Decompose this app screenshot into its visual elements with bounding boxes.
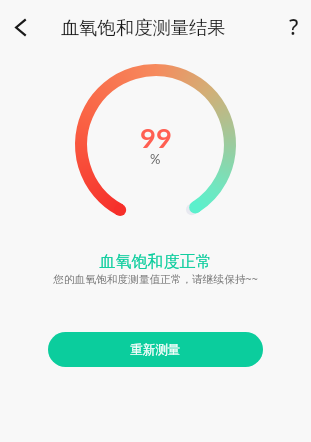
button[interactable]: Back (0, 7, 40, 47)
staticText: 99 (140, 121, 172, 154)
staticText: % (150, 151, 161, 167)
staticText: 重新测量 (130, 342, 181, 358)
button[interactable]: Help (277, 7, 311, 47)
staticText: ? (289, 13, 299, 42)
staticText: 血氧饱和度正常 (0, 252, 311, 272)
staticText: 血氧饱和度测量结果 (61, 16, 226, 39)
staticText: 您的血氧饱和度测量值正常，请继续保持~~ (0, 272, 311, 287)
button[interactable]: 重新测量 (48, 332, 263, 367)
